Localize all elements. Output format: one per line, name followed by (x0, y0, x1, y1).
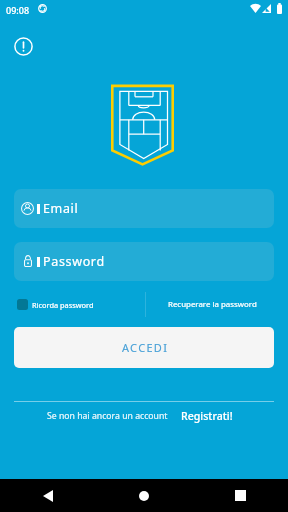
button[interactable]: Info (7, 30, 39, 62)
button[interactable]: Registrati! (179, 407, 235, 425)
staticText: Registrati! (181, 409, 233, 423)
staticText: Recuperare la password (168, 299, 257, 310)
button[interactable]: Home (96, 479, 192, 512)
staticText: 09:08 (6, 4, 30, 16)
staticText: Se non hai ancora un account (47, 410, 168, 422)
staticText: Ricorda password (32, 300, 94, 310)
button[interactable]: Password (14, 242, 274, 281)
staticText: ACCEDI (122, 340, 169, 355)
button[interactable]: Ricorda password (0, 292, 145, 317)
staticText: Email (43, 200, 79, 217)
button[interactable]: Back (0, 479, 96, 512)
button[interactable]: ACCEDI (14, 327, 274, 368)
staticText: Password (43, 253, 105, 270)
button[interactable]: Email (14, 189, 274, 228)
button[interactable]: Recuperare la password (148, 292, 276, 317)
button[interactable]: Recent apps (192, 479, 288, 512)
